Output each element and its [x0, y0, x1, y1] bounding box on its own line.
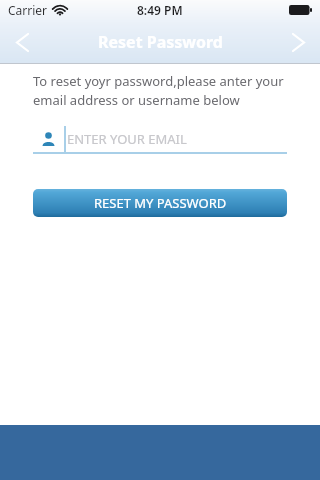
button[interactable] [284, 26, 312, 58]
button[interactable]: ENTER YOUR EMAIL [33, 124, 287, 154]
staticText: Carrier [8, 2, 48, 18]
button[interactable] [8, 26, 36, 58]
staticText: RESET MY PASSWORD [94, 194, 227, 212]
button[interactable]: RESET MY PASSWORD [33, 189, 287, 217]
staticText: ENTER YOUR EMAIL [67, 130, 187, 148]
staticText: Reset Password [98, 31, 223, 53]
staticText: 8:49 PM [137, 2, 183, 18]
staticText: To reset yoyr password,please anter your… [33, 72, 284, 109]
